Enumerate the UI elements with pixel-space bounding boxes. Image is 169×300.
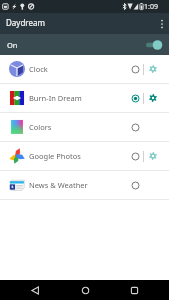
staticText: 1:09 [144,2,158,12]
button[interactable]: Recents [120,280,148,300]
button[interactable]: More options [155,13,169,34]
button[interactable]: Select Burn-In Dream [125,84,142,112]
button[interactable]: Select Colors [125,113,142,141]
button[interactable]: News & Weather [0,171,169,199]
button[interactable]: Google Photos [0,142,169,170]
button[interactable]: Clock [0,55,169,83]
staticText: On [7,40,18,50]
button[interactable]: Burn-In Dream [0,84,169,112]
button[interactable]: Settings for Google Photos [143,142,163,170]
button[interactable]: Select Clock [125,55,142,83]
staticText: Colors [29,122,52,132]
button[interactable]: Select Google Photos [125,142,142,170]
staticText: News & Weather [29,180,88,190]
button[interactable]: On [0,34,169,55]
staticText: Burn-In Dream [29,93,82,103]
button[interactable]: Colors [0,113,169,141]
button[interactable]: Back [21,280,49,300]
button[interactable]: Home [71,280,99,300]
button[interactable]: Select News & Weather [125,171,142,199]
staticText: Clock [29,64,48,74]
staticText: Google Photos [29,151,81,161]
button[interactable]: Settings for Burn-In Dream [143,84,163,112]
button[interactable]: Settings for Clock [143,55,163,83]
staticText: Daydream [6,17,45,28]
